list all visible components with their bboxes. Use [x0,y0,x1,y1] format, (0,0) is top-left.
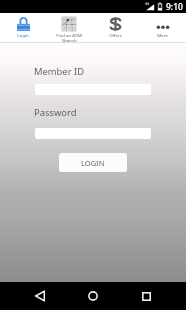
button[interactable]: LOGIN [59,153,127,172]
staticText: More [157,32,168,38]
button[interactable]: Login [0,13,46,38]
staticText: Offers [109,32,122,38]
button[interactable]: Find an ATM/ Branch [46,13,92,42]
staticText: Login [17,32,29,38]
staticText: Find an ATM/ Branch [56,32,83,42]
button[interactable]: Back [27,283,53,309]
staticText: LOGIN [81,158,105,168]
button[interactable]: Recent apps [133,283,159,309]
button[interactable]: More [139,13,186,38]
staticText: Password [34,106,77,119]
staticText: Member ID [34,65,85,78]
button[interactable]: Offers [92,13,139,38]
button[interactable]: Home [80,283,106,309]
staticText: 9:10 [166,1,183,13]
